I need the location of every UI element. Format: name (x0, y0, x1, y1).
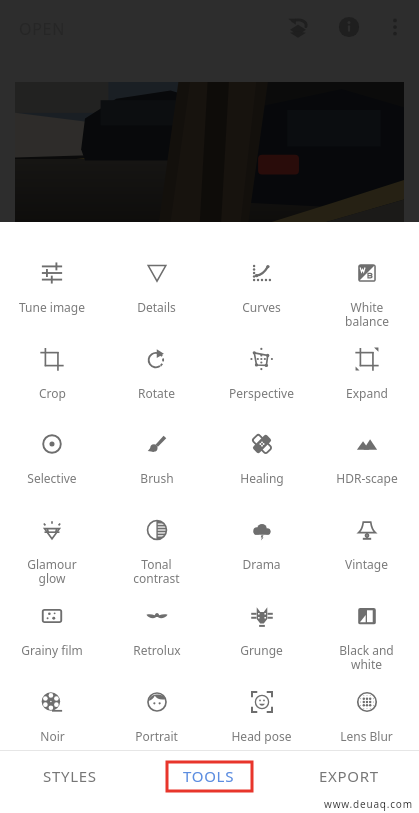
button[interactable]: EXPORT (279, 751, 419, 801)
button[interactable]: Retrolux (104, 591, 209, 677)
button[interactable]: Info (327, 5, 371, 49)
staticText: Rotate (138, 385, 175, 401)
button[interactable]: White balance (314, 248, 419, 334)
staticText: Portrait (135, 728, 178, 744)
button[interactable]: Head pose (209, 677, 314, 763)
staticText: Curves (242, 299, 281, 315)
staticText: Black and white (339, 642, 394, 673)
staticText: TOOLS (183, 766, 235, 786)
button[interactable]: Vintage (314, 505, 419, 591)
staticText: Grainy film (21, 642, 83, 658)
button[interactable]: HDR-scape (314, 419, 419, 505)
button[interactable]: Grunge (209, 591, 314, 677)
staticText: EXPORT (319, 766, 379, 786)
button[interactable]: Grainy film (0, 591, 104, 677)
button[interactable]: Crop (0, 334, 104, 420)
button[interactable]: Undo (276, 5, 320, 49)
button[interactable]: STYLES (0, 751, 139, 801)
staticText: STYLES (43, 766, 97, 786)
staticText: White balance (345, 299, 389, 330)
staticText: Tune image (19, 299, 85, 315)
staticText: Drama (242, 556, 281, 572)
staticText: www.deuaq.com (324, 797, 413, 811)
staticText: Brush (140, 470, 174, 486)
button[interactable]: Details (104, 248, 209, 334)
staticText: Noir (40, 728, 65, 744)
button[interactable]: Curves (209, 248, 314, 334)
button[interactable]: Portrait (104, 677, 209, 763)
button[interactable]: Rotate (104, 334, 209, 420)
button[interactable]: Brush (104, 419, 209, 505)
button[interactable]: Lens Blur (314, 677, 419, 763)
button[interactable]: Perspective (209, 334, 314, 420)
staticText: Vintage (345, 556, 388, 572)
staticText: Crop (39, 385, 66, 401)
button[interactable]: Black and white (314, 591, 419, 677)
staticText: Glamour glow (27, 556, 77, 587)
staticText: Grunge (240, 642, 283, 658)
staticText: Lens Blur (340, 728, 393, 744)
button[interactable]: Tune image (0, 248, 104, 334)
button[interactable]: Expand (314, 334, 419, 420)
button[interactable]: Healing (209, 419, 314, 505)
button[interactable]: Selective (0, 419, 104, 505)
staticText: Details (137, 299, 176, 315)
staticText: Retrolux (133, 642, 181, 658)
button[interactable]: Tonal contrast (104, 505, 209, 591)
button[interactable]: Drama (209, 505, 314, 591)
staticText: Healing (240, 470, 284, 486)
staticText: Perspective (229, 385, 294, 401)
button[interactable]: Glamour glow (0, 505, 104, 591)
staticText: Expand (346, 385, 388, 401)
button[interactable]: Noir (0, 677, 104, 763)
button[interactable]: TOOLS (139, 751, 279, 801)
staticText: Head pose (231, 728, 292, 744)
staticText: Selective (27, 470, 77, 486)
staticText: Tonal contrast (133, 556, 180, 587)
staticText: HDR-scape (336, 470, 398, 486)
